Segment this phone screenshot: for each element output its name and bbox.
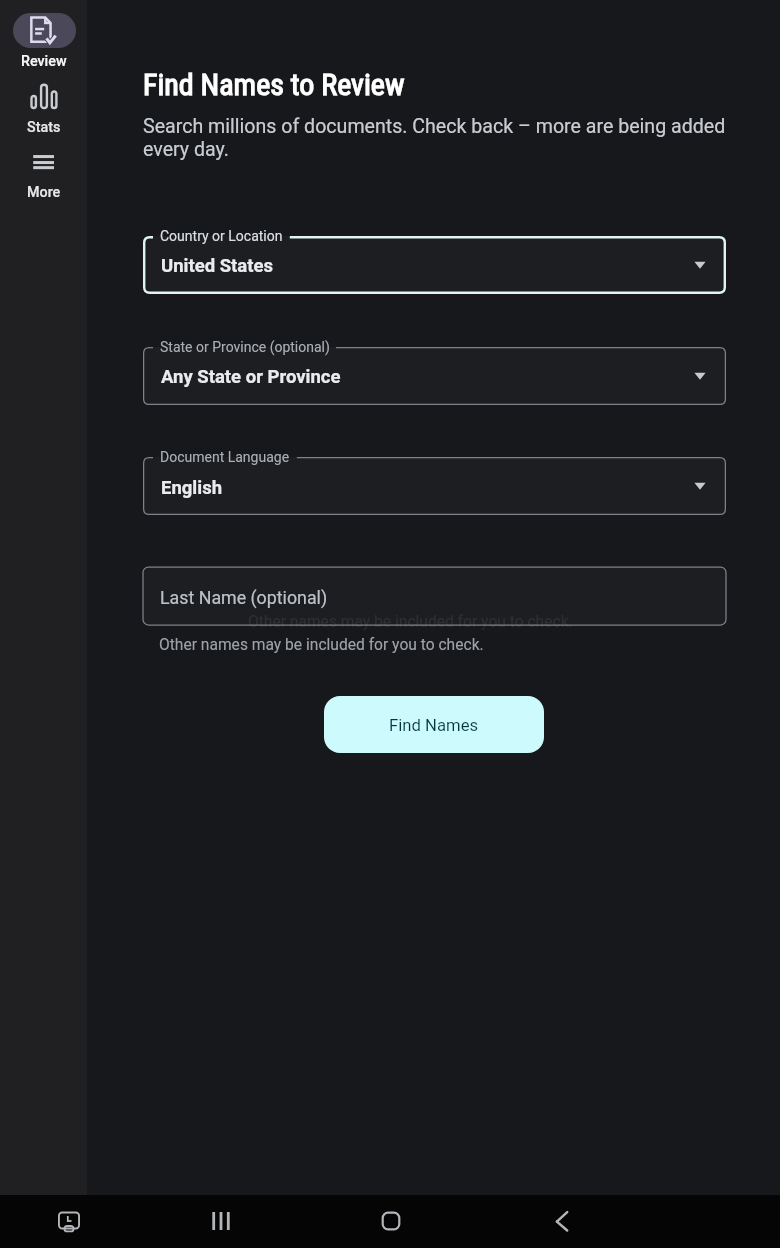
button[interactable] [143, 567, 726, 625]
button[interactable]: Back [538, 1197, 586, 1245]
staticText: State or Province (optional) [160, 339, 330, 355]
staticText: Any State or Province [161, 366, 341, 388]
staticText: Find Names [389, 716, 479, 736]
button[interactable] [143, 347, 726, 405]
button[interactable]: Home [367, 1197, 415, 1245]
button[interactable] [143, 236, 726, 294]
staticText: Country or Location [160, 228, 283, 244]
staticText: Review [21, 53, 67, 70]
staticText: Other names may be included for you to c… [159, 636, 484, 654]
staticText: English [161, 477, 223, 499]
staticText: Stats [27, 119, 61, 136]
button[interactable]: Find Names [324, 696, 544, 753]
button[interactable]: Recent apps [197, 1197, 245, 1245]
staticText: Last Name (optional) [160, 587, 328, 608]
staticText: More [27, 184, 61, 201]
staticText: Other names may be included for you to c… [248, 613, 573, 631]
staticText: every day. [143, 138, 229, 161]
staticText: United States [161, 255, 274, 277]
button[interactable]: Review [0, 8, 88, 70]
button[interactable]: Stats [0, 74, 88, 136]
button[interactable]: Hide keyboard [45, 1197, 93, 1245]
staticText: Search millions of documents. Check back… [143, 115, 726, 138]
staticText: Find Names to Review [143, 67, 405, 102]
button[interactable]: More [0, 139, 88, 201]
staticText: Document Language [160, 449, 290, 465]
button[interactable] [143, 457, 726, 515]
